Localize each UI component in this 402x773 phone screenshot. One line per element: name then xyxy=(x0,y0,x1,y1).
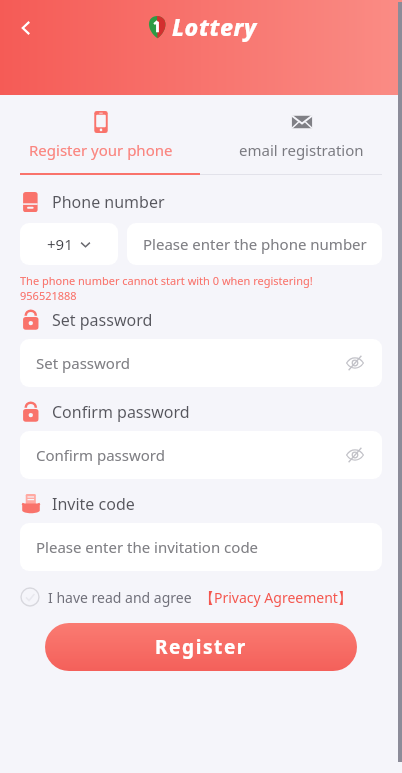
staticText: Register your phone xyxy=(29,140,173,160)
staticText: Invite code xyxy=(52,493,135,515)
button[interactable]: email registration xyxy=(201,95,402,175)
button[interactable]: Register your phone xyxy=(0,95,201,175)
staticText: Set password xyxy=(52,309,153,331)
button[interactable]: Show password xyxy=(342,442,368,468)
staticText: Please enter the phone number xyxy=(143,234,367,254)
staticText: Confirm password xyxy=(52,401,190,423)
button[interactable]: Please enter the invitation code xyxy=(20,523,382,571)
staticText: The phone number cannot start with 0 whe… xyxy=(20,273,313,288)
button[interactable]: Set password xyxy=(20,339,382,387)
button[interactable]: Register xyxy=(45,623,357,671)
button[interactable]: Show password xyxy=(342,350,368,376)
button[interactable]: 【Privacy Agreement】 xyxy=(200,588,352,607)
button[interactable]: Back xyxy=(8,10,44,46)
button[interactable]: Please enter the phone number xyxy=(127,223,382,265)
staticText: Confirm password xyxy=(36,445,165,465)
button[interactable]: I have read and agree xyxy=(20,587,402,607)
staticText: Phone number xyxy=(52,191,165,213)
staticText: 956521888 xyxy=(20,288,77,303)
button[interactable]: +91 xyxy=(20,223,118,265)
staticText: email registration xyxy=(239,140,364,160)
button[interactable]: Confirm password xyxy=(20,431,382,479)
staticText: Set password xyxy=(36,353,131,373)
staticText: +91 xyxy=(47,234,73,254)
staticText: Register xyxy=(155,634,247,660)
staticText: Lottery xyxy=(172,11,257,42)
staticText: I have read and agree xyxy=(48,588,192,607)
staticText: Please enter the invitation code xyxy=(36,537,259,557)
